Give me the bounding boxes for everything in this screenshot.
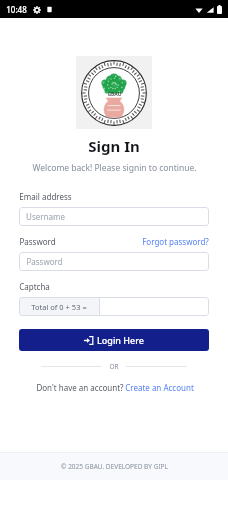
button[interactable]: [100, 297, 209, 316]
button[interactable]: Login Here: [19, 329, 209, 351]
staticText: Create an Account: [125, 382, 194, 393]
staticText: Captcha: [19, 281, 50, 292]
staticText: Username: [26, 211, 65, 222]
staticText: Password: [19, 236, 56, 247]
staticText: GBAU: [107, 91, 122, 98]
button[interactable]: Password: [19, 252, 209, 271]
button[interactable]: Create an Account: [125, 382, 194, 393]
button[interactable]: Forgot password?: [142, 236, 209, 247]
staticText: Email address: [19, 191, 72, 202]
staticText: Total of 0 + 53 =: [31, 302, 87, 312]
button[interactable]: Username: [19, 207, 209, 226]
staticText: OR: [109, 362, 119, 371]
staticText: Password: [26, 256, 63, 267]
staticText: Sign In: [88, 136, 140, 156]
staticText: Welcome back! Please signin to continue.: [32, 162, 197, 174]
staticText: Forgot password?: [142, 236, 209, 247]
staticText: © 2025 GBAU. DEVELOPED BY GIPL: [61, 462, 168, 471]
staticText: 10:48: [6, 4, 27, 15]
staticText: Don't have an account?: [35, 382, 125, 393]
staticText: Login Here: [97, 334, 144, 346]
